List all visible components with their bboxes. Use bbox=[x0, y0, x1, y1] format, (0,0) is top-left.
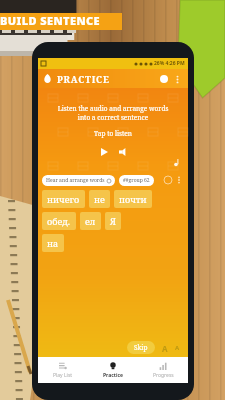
button[interactable]: Hear and arrange words bbox=[42, 175, 115, 186]
staticText: Я bbox=[110, 215, 116, 227]
button[interactable]: на bbox=[42, 234, 64, 252]
staticText: Skip bbox=[134, 343, 148, 352]
staticText: A bbox=[175, 344, 180, 352]
button[interactable]: обед. bbox=[42, 212, 76, 230]
button[interactable]: Menu bbox=[174, 175, 184, 185]
staticText: PRACTICE bbox=[57, 73, 110, 85]
staticText: ничего bbox=[47, 193, 80, 205]
button[interactable]: ##group 62 bbox=[119, 175, 154, 186]
button[interactable]: Speaker bbox=[115, 144, 131, 160]
staticText: Tap to listen bbox=[38, 129, 188, 138]
button[interactable]: Practice bbox=[88, 357, 138, 383]
button[interactable]: Music note bbox=[170, 156, 182, 168]
staticText: A bbox=[162, 343, 168, 354]
button[interactable]: Я bbox=[105, 212, 121, 230]
button[interactable]: Record bbox=[157, 72, 171, 86]
staticText: Progress bbox=[153, 372, 174, 379]
staticText: Hear and arrange words bbox=[46, 177, 105, 184]
staticText: Play List bbox=[53, 372, 73, 379]
staticText: обед. bbox=[47, 215, 71, 227]
staticText: на bbox=[47, 237, 59, 249]
button[interactable]: Play List bbox=[38, 357, 88, 383]
staticText: BUILD SENTENCE QUIZ bbox=[0, 13, 122, 30]
button[interactable]: Settings bbox=[162, 174, 174, 186]
button[interactable]: не bbox=[89, 190, 110, 208]
button[interactable]: ничего bbox=[42, 190, 85, 208]
button[interactable]: Decrease text size bbox=[171, 342, 183, 354]
staticText: ##group 62 bbox=[123, 177, 150, 184]
button[interactable]: Progress bbox=[138, 357, 188, 383]
staticText: ел bbox=[85, 215, 96, 227]
staticText: Practice bbox=[103, 372, 124, 379]
button[interactable]: почти bbox=[114, 190, 152, 208]
staticText: 26% 4:26 PM bbox=[154, 60, 185, 67]
button[interactable]: ел bbox=[80, 212, 101, 230]
staticText: не bbox=[94, 193, 105, 205]
staticText: почти bbox=[119, 193, 147, 205]
button[interactable]: Skip bbox=[127, 341, 155, 354]
button[interactable]: More options bbox=[171, 73, 183, 85]
button[interactable]: Increase text size bbox=[159, 342, 171, 354]
staticText: Listen the audio and arrange words into … bbox=[38, 104, 188, 122]
button[interactable]: Play audio bbox=[96, 144, 112, 160]
